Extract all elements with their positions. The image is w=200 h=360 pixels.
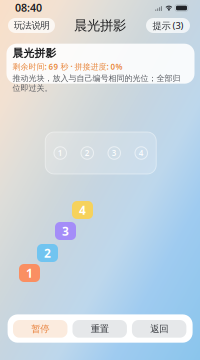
staticText: 玩法说明 — [13, 20, 49, 31]
staticText: 3 — [112, 148, 117, 158]
staticText: 剩余时间: 69 秒 · 拼接进度: 0% — [12, 61, 122, 72]
staticText: 2 — [85, 148, 90, 158]
staticText: 晨光拼影 — [74, 17, 126, 34]
staticText: 08:40 — [15, 0, 42, 15]
button[interactable]: 4 — [72, 201, 93, 219]
button[interactable]: 重置 — [72, 320, 127, 338]
button[interactable]: 提示 (3) — [146, 18, 190, 33]
staticText: 推动光块，放入与自己编号相同的光位；全部归位即过关。 — [12, 73, 180, 93]
button[interactable]: 玩法说明 — [8, 18, 55, 33]
staticText: 4 — [139, 148, 144, 158]
button[interactable]: 1 — [19, 264, 40, 282]
staticText: 暂停 — [31, 323, 49, 335]
button[interactable]: 返回 — [132, 320, 186, 338]
button[interactable]: 3 — [55, 222, 76, 240]
button[interactable]: 2 — [37, 244, 58, 262]
staticText: 1 — [58, 148, 63, 158]
staticText: 提示 (3) — [152, 19, 183, 32]
staticText: 重置 — [91, 323, 109, 335]
staticText: 3 — [62, 223, 69, 239]
button[interactable]: 暂停 — [13, 320, 67, 338]
staticText: 1 — [26, 265, 33, 281]
staticText: 2 — [44, 245, 51, 261]
staticText: 4 — [79, 202, 86, 218]
staticText: 返回 — [150, 323, 168, 335]
staticText: 晨光拼影 — [12, 47, 56, 60]
